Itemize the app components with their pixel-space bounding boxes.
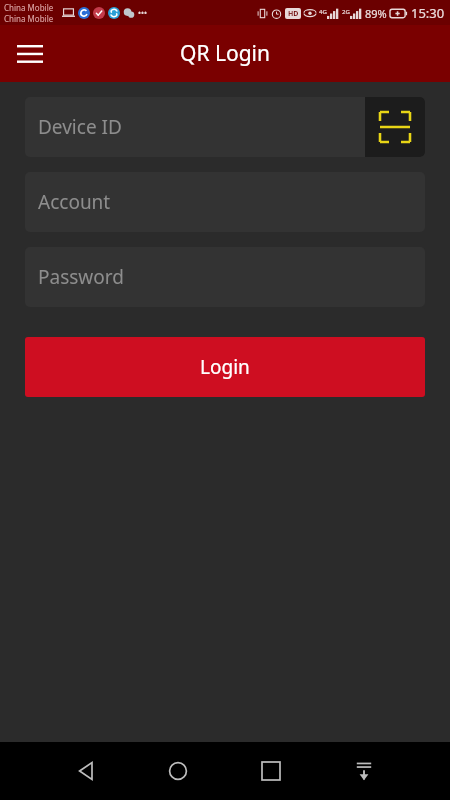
staticText: Password <box>38 264 124 290</box>
staticText: HD <box>288 9 299 19</box>
button[interactable]: Device ID <box>25 97 425 157</box>
button[interactable]: Menu <box>8 32 52 76</box>
staticText: China Mobile <box>4 13 54 24</box>
staticText: 2G <box>342 8 350 16</box>
button[interactable]: Back <box>60 745 112 797</box>
staticText: Device ID <box>38 114 122 140</box>
button[interactable]: Password <box>25 247 425 307</box>
staticText: 4G <box>319 8 327 16</box>
button[interactable]: Login <box>25 337 425 397</box>
button[interactable]: Home <box>152 745 204 797</box>
staticText: 89% <box>365 6 387 21</box>
staticText: QR Login <box>180 39 270 68</box>
staticText: 15:30 <box>411 4 445 22</box>
staticText: Login <box>200 354 250 380</box>
button[interactable]: Hide navigation bar <box>338 745 390 797</box>
staticText: China Mobile <box>4 2 54 13</box>
button[interactable]: Scan QR code <box>365 97 425 157</box>
button[interactable]: Account <box>25 172 425 232</box>
staticText: ••• <box>138 7 148 18</box>
button[interactable]: Recent apps <box>245 745 297 797</box>
staticText: Account <box>38 189 111 215</box>
